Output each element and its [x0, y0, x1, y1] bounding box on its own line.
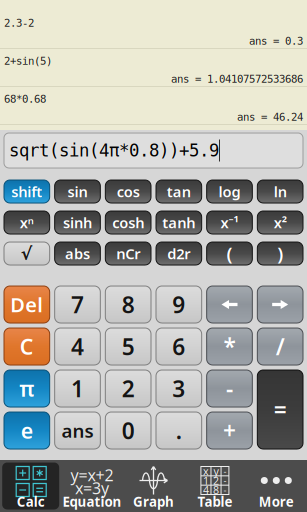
staticText: d2r — [167, 244, 190, 263]
button[interactable]: = — [257, 370, 303, 449]
staticText: y=x+2 — [71, 464, 114, 486]
staticText: ) — [277, 241, 283, 266]
staticText: 68*0.68 — [4, 93, 46, 105]
staticText: - — [223, 474, 226, 487]
staticText: cos — [117, 182, 140, 201]
button[interactable]: - — [207, 370, 252, 407]
button[interactable]: shift — [4, 180, 50, 203]
button[interactable]: 6 — [156, 328, 202, 365]
button[interactable]: 8 — [105, 286, 151, 323]
button[interactable]: + — [207, 412, 252, 449]
staticText: ln — [274, 182, 287, 201]
staticText: Del — [10, 291, 43, 318]
button[interactable]: y=x+2 — [61, 460, 123, 512]
button[interactable]: ( — [207, 242, 252, 265]
staticText: 6 — [172, 331, 185, 361]
staticText: 5 — [122, 331, 135, 361]
staticText: ans = 0.3 — [249, 35, 303, 47]
button[interactable]: x² — [257, 211, 303, 234]
button[interactable]: nCr — [105, 242, 151, 265]
button[interactable]: e — [4, 412, 50, 449]
staticText: 8 — [213, 483, 219, 497]
staticText: Table — [197, 493, 232, 510]
button[interactable]: 3 — [156, 370, 202, 407]
staticText: 3 — [172, 373, 185, 403]
staticText: - — [223, 484, 226, 496]
staticText: 9 — [172, 289, 185, 319]
staticText: tan — [167, 182, 191, 201]
button[interactable]: 9 — [156, 286, 202, 323]
button[interactable]: * — [207, 328, 252, 365]
staticText: ans = 46.24 — [237, 111, 303, 123]
staticText: 4 — [203, 483, 209, 497]
button[interactable]: xⁿ — [4, 211, 50, 234]
staticText: Graph — [133, 493, 174, 510]
staticText: C — [20, 332, 34, 361]
staticText: 1 — [71, 373, 84, 403]
button[interactable]: Move cursor left — [207, 286, 252, 323]
button[interactable]: Move cursor right — [257, 286, 303, 323]
button[interactable]: ans — [55, 412, 100, 449]
staticText: 2.3-2 — [4, 17, 34, 29]
staticText: cosh — [112, 213, 144, 232]
button[interactable]: Calc — [0, 460, 61, 512]
button[interactable]: abs — [55, 242, 100, 265]
button[interactable]: / — [257, 328, 303, 365]
staticText: x=3y — [75, 477, 109, 499]
staticText: y — [213, 464, 218, 478]
staticText: 0 — [122, 415, 135, 445]
button[interactable]: 7 — [55, 286, 100, 323]
staticText: - — [223, 465, 226, 477]
button[interactable]: 1 — [55, 370, 100, 407]
staticText: sin — [67, 182, 87, 201]
staticText: / — [276, 331, 285, 361]
button[interactable]: ln — [257, 180, 303, 203]
button[interactable]: d2r — [156, 242, 202, 265]
staticText: sinh — [63, 213, 92, 232]
button[interactable]: . — [156, 412, 202, 449]
staticText: √ — [21, 244, 33, 263]
button[interactable]: π — [4, 370, 50, 407]
staticText: sqrt(sin(4π*0.8))+5.9 — [9, 141, 219, 160]
button[interactable]: Graph — [123, 460, 184, 512]
button[interactable]: 0 — [105, 412, 151, 449]
button[interactable]: log — [207, 180, 252, 203]
button[interactable]: 4 — [55, 328, 100, 365]
staticText: x⁻¹ — [220, 213, 238, 232]
staticText: . — [176, 415, 182, 445]
staticText: 4 — [71, 331, 84, 361]
staticText: 7 — [71, 289, 84, 319]
staticText: x² — [274, 213, 287, 232]
button[interactable]: √ — [4, 242, 50, 265]
staticText: tanh — [162, 213, 195, 232]
staticText: 2+sin(5) — [4, 55, 52, 67]
staticText: ans — [61, 418, 93, 443]
button[interactable]: x — [184, 460, 246, 512]
staticText: 1 — [203, 473, 209, 488]
staticText: = — [274, 394, 287, 424]
button[interactable]: More — [246, 460, 307, 512]
button[interactable]: x⁻¹ — [207, 211, 252, 234]
staticText: xⁿ — [20, 213, 34, 232]
button[interactable]: sinh — [55, 211, 100, 234]
button[interactable]: cos — [105, 180, 151, 203]
staticText: shift — [11, 182, 42, 201]
staticText: 2 — [213, 473, 219, 488]
staticText: log — [218, 182, 240, 201]
staticText: * — [223, 331, 235, 361]
button[interactable]: 5 — [105, 328, 151, 365]
staticText: nCr — [116, 244, 140, 263]
button[interactable]: tan — [156, 180, 202, 203]
button[interactable]: ) — [257, 242, 303, 265]
staticText: π — [19, 374, 34, 403]
button[interactable]: 2 — [105, 370, 151, 407]
staticText: ans = 1.04107572533686 — [171, 73, 303, 85]
button[interactable]: tanh — [156, 211, 202, 234]
button[interactable]: cosh — [105, 211, 151, 234]
staticText: Calc — [17, 493, 45, 510]
button[interactable]: Del — [4, 286, 50, 323]
staticText: Equation — [63, 493, 122, 510]
staticText: - — [226, 373, 233, 403]
button[interactable]: sin — [55, 180, 100, 203]
button[interactable]: C — [4, 328, 50, 365]
